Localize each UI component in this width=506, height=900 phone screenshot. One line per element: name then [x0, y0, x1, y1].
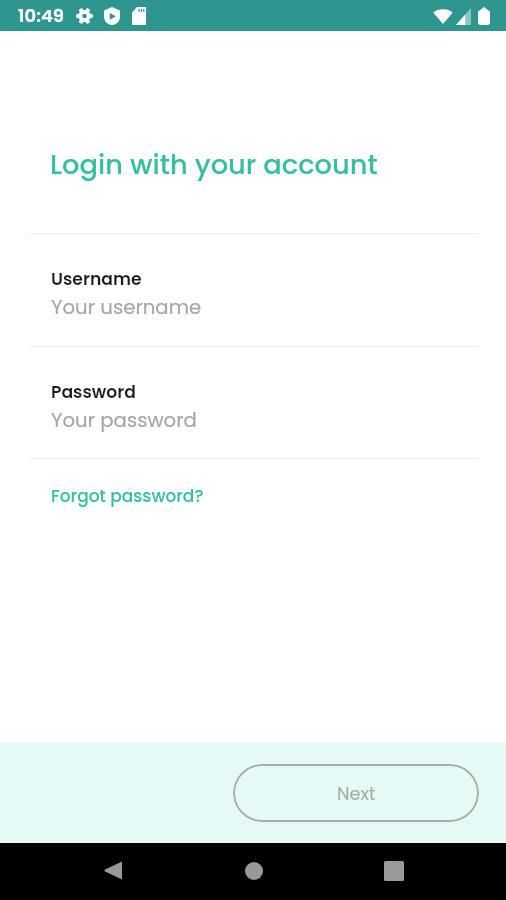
other: Battery — [478, 7, 490, 25]
staticText: Password — [51, 380, 136, 404]
other: Settings — [76, 7, 93, 25]
staticText: Your password — [51, 406, 197, 434]
staticText: Username — [51, 267, 142, 291]
other: Mobile signal — [456, 8, 471, 25]
button[interactable]: Username — [0, 234, 506, 346]
button[interactable]: Back — [83, 842, 140, 899]
button[interactable]: Home — [225, 842, 282, 899]
button[interactable]: Password — [0, 347, 506, 459]
other: Wi-Fi — [433, 8, 453, 24]
button[interactable]: Forgot password? — [33, 474, 218, 518]
staticText: Your username — [51, 293, 202, 321]
button[interactable]: Next — [233, 764, 479, 822]
other: Security — [104, 7, 120, 25]
staticText: Forgot password? — [51, 484, 204, 508]
staticText: 10:49 — [18, 3, 65, 28]
button[interactable]: Recent apps — [365, 842, 422, 899]
staticText: Login with your account — [50, 145, 378, 183]
other: Storage — [132, 7, 146, 25]
staticText: Next — [337, 781, 376, 806]
